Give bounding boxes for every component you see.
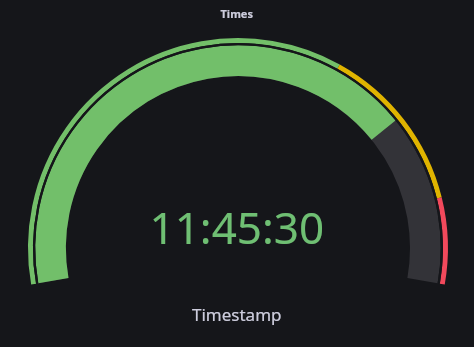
- button[interactable]: Times gauge panel: [0, 0, 474, 347]
